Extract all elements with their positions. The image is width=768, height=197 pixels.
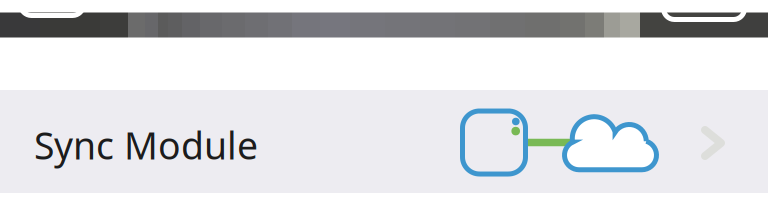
staticText: Sync Module (34, 120, 258, 170)
button[interactable]: Sync Module (0, 90, 768, 193)
